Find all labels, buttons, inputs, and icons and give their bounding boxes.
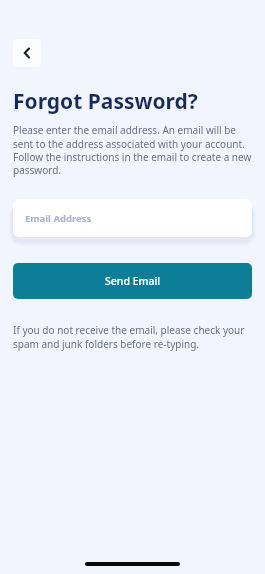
staticText: If you do not receive the email, please …	[13, 323, 252, 351]
staticText: Send Email	[105, 274, 161, 288]
staticText: Forgot Password?	[13, 87, 198, 116]
staticText: Email Address	[25, 212, 92, 225]
button[interactable]: Email Address	[13, 199, 252, 237]
staticText: Please enter the email address. An email…	[13, 123, 252, 177]
button[interactable]: Back	[13, 39, 41, 67]
button[interactable]: Send Email	[13, 263, 252, 299]
